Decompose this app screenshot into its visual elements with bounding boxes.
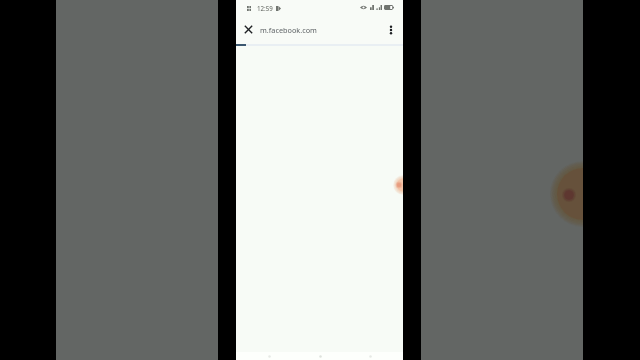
staticText: 12:59 xyxy=(257,4,273,12)
button[interactable]: Close xyxy=(236,17,261,42)
staticText: m.facebook.com xyxy=(260,25,317,35)
button[interactable]: Home xyxy=(313,352,327,360)
button[interactable]: Back xyxy=(262,352,276,360)
button[interactable]: Recent apps xyxy=(363,352,377,360)
button[interactable]: More options xyxy=(378,17,403,42)
button[interactable]: m.facebook.com xyxy=(260,25,317,35)
